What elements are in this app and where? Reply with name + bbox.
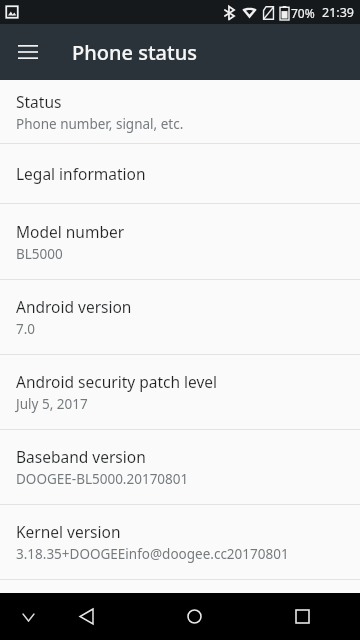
staticText: 3.18.35+DOOGEEinfo@doogee.cc20170801 <box>16 545 289 563</box>
button[interactable]: Back <box>62 593 110 640</box>
staticText: Android version <box>16 296 132 317</box>
staticText: 70% <box>291 5 315 21</box>
button[interactable]: Baseband version <box>0 430 360 504</box>
staticText: Baseband version <box>16 446 146 467</box>
staticText: Android security patch level <box>16 371 218 392</box>
button[interactable]: Android version <box>0 280 360 354</box>
button[interactable]: Hide <box>10 599 46 635</box>
button[interactable]: Status <box>0 80 360 143</box>
staticText: DOOGEE-BL5000.20170801 <box>16 470 189 488</box>
staticText: 7.0 <box>16 320 36 338</box>
button[interactable]: Recent apps <box>278 593 326 640</box>
staticText: Legal information <box>16 163 146 184</box>
staticText: Phone status <box>72 39 197 66</box>
button[interactable]: Home <box>170 593 218 640</box>
staticText: Status <box>16 91 62 112</box>
staticText: Phone number, signal, etc. <box>16 115 184 133</box>
staticText: July 5, 2017 <box>16 395 88 413</box>
button[interactable]: Model number <box>0 204 360 279</box>
button[interactable]: Kernel version <box>0 505 360 579</box>
button[interactable]: Open navigation menu <box>4 28 52 76</box>
button[interactable]: Android security patch level <box>0 355 360 429</box>
staticText: Model number <box>16 221 125 242</box>
staticText: BL5000 <box>16 245 63 263</box>
staticText: Kernel version <box>16 521 121 542</box>
staticText: 21:39 <box>322 4 354 21</box>
button[interactable]: Legal information <box>0 144 360 203</box>
